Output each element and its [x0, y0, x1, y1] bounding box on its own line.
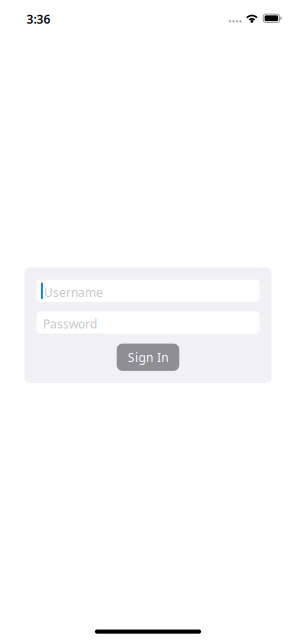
button[interactable]: Username — [36, 280, 259, 302]
staticText: 3:36 — [27, 11, 51, 27]
button[interactable]: Sign In — [117, 344, 179, 371]
button[interactable]: Password — [36, 311, 259, 334]
staticText: Username — [44, 284, 103, 300]
staticText: Password — [43, 316, 97, 332]
staticText: Sign In — [128, 349, 168, 365]
